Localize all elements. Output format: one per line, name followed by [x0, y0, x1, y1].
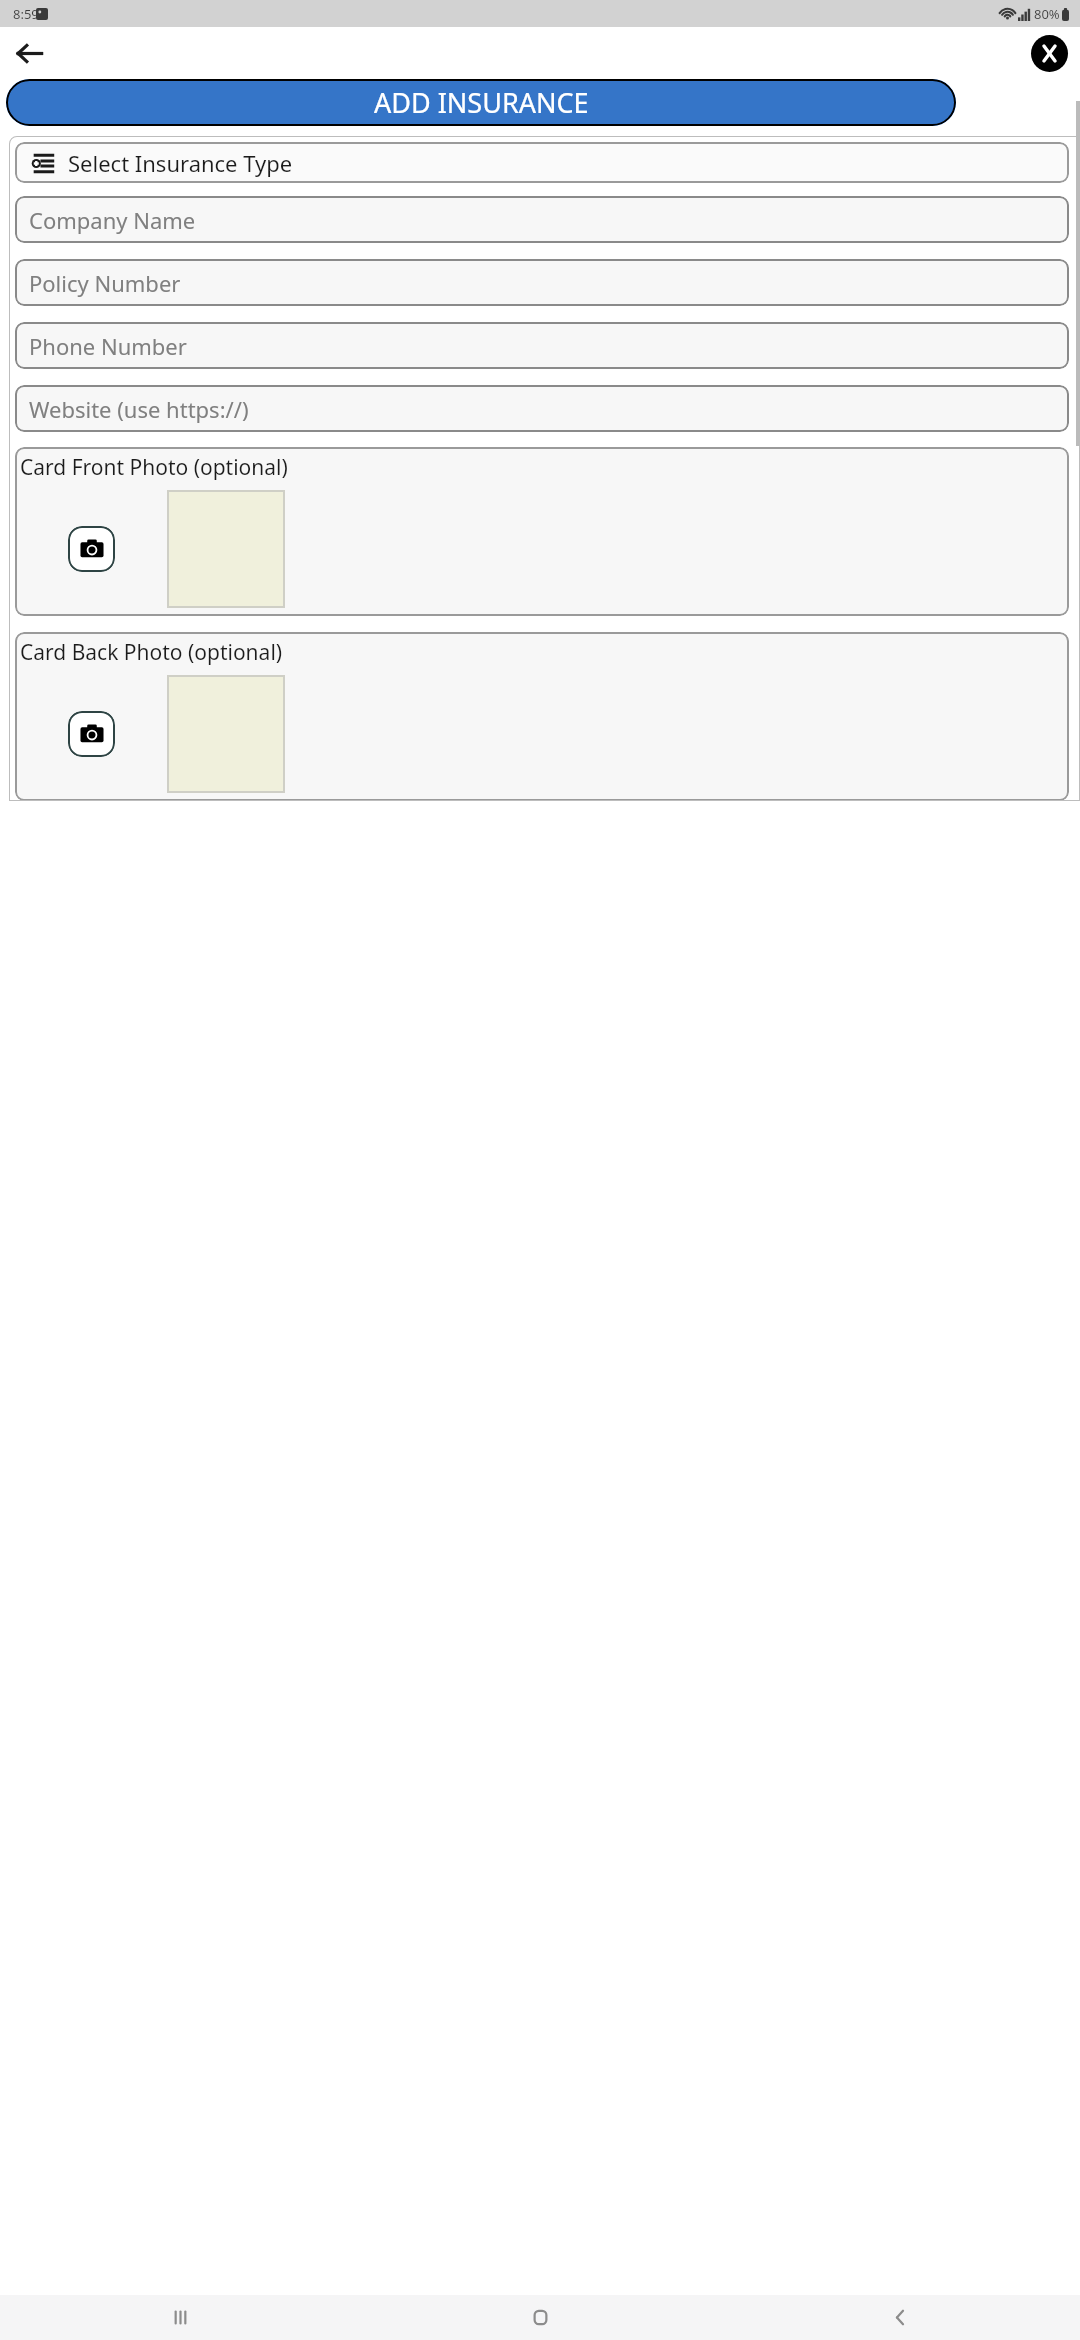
button[interactable]: Back [6, 30, 52, 76]
button[interactable]: Back [720, 2295, 1080, 2340]
staticText: Phone Number [29, 331, 187, 361]
button[interactable]: Select Insurance Type [15, 142, 1069, 183]
staticText: Select Insurance Type [68, 148, 293, 178]
staticText: Website (use https://) [29, 394, 249, 424]
button[interactable]: Phone Number [15, 322, 1069, 369]
staticText: Company Name [29, 205, 196, 235]
button[interactable]: Company Name [15, 196, 1069, 243]
button[interactable]: Recents [0, 2295, 360, 2340]
button[interactable]: ADD INSURANCE [6, 79, 956, 126]
button[interactable]: Website (use https://) [15, 385, 1069, 432]
button[interactable]: Policy Number [15, 259, 1069, 306]
staticText: 80% [1034, 5, 1060, 23]
button[interactable]: Take photo [68, 711, 115, 757]
staticText: 8:59 [13, 5, 39, 23]
button[interactable]: Take photo [68, 526, 115, 572]
staticText: Policy Number [29, 268, 181, 298]
staticText: Card Back Photo (optional) [20, 638, 283, 667]
button[interactable]: Home [360, 2295, 720, 2340]
staticText: Card Front Photo (optional) [20, 453, 288, 482]
staticText: ADD INSURANCE [374, 84, 589, 121]
button[interactable]: Close [1026, 30, 1072, 76]
